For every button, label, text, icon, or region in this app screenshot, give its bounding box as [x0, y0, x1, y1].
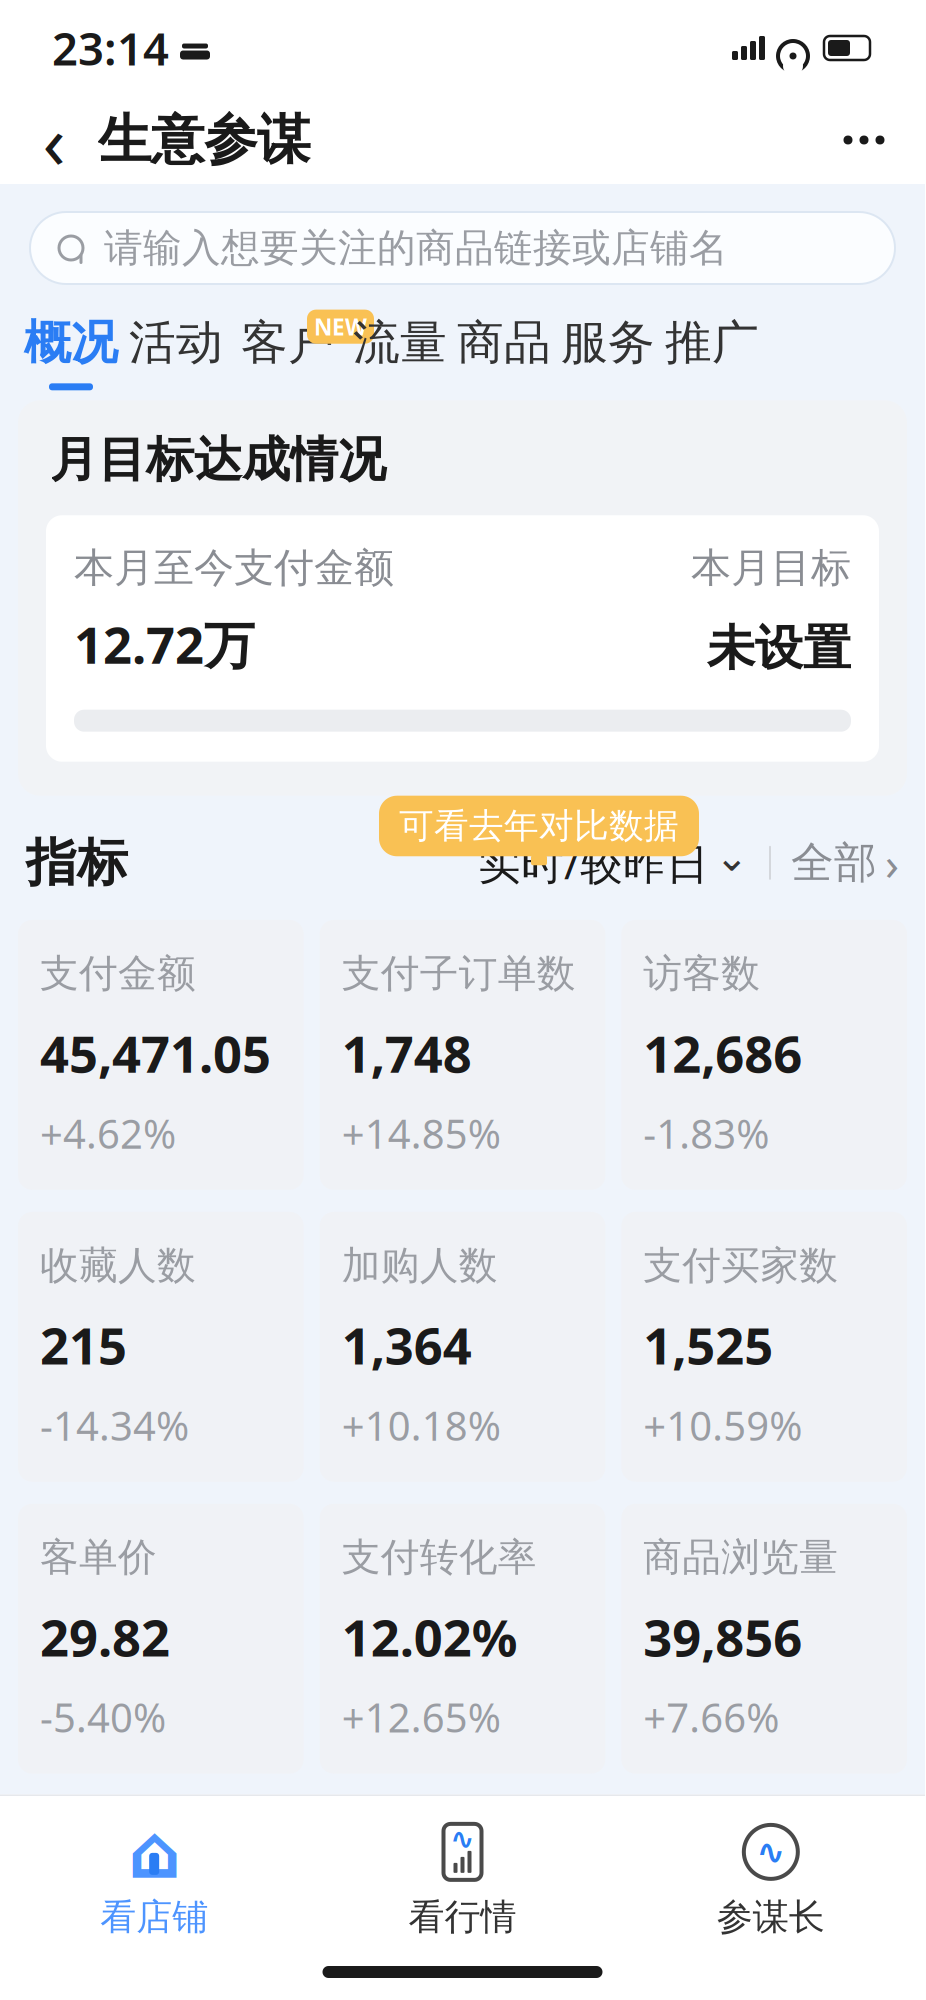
- staticText: +4.62%: [40, 1107, 176, 1160]
- button[interactable]: Back: [26, 105, 82, 175]
- staticText: 本月至今支付金额: [74, 543, 394, 592]
- staticText: ‹: [42, 90, 65, 190]
- staticText: +14.85%: [342, 1107, 501, 1160]
- button[interactable]: 活动: [124, 314, 228, 390]
- staticText: 215: [40, 1311, 127, 1379]
- staticText: +10.59%: [643, 1399, 802, 1452]
- button[interactable]: 客户: [228, 314, 348, 390]
- staticText: +12.65%: [342, 1690, 501, 1744]
- button[interactable]: 其他 12: [306, 1922, 460, 1982]
- staticText: 全部: [791, 837, 877, 889]
- staticText: 12.72万: [74, 610, 255, 678]
- staticText: 月目标达成情况: [50, 430, 386, 489]
- button[interactable]: ∿: [617, 1801, 925, 1939]
- staticText: 23:14: [52, 18, 169, 78]
- button[interactable]: 全部: [791, 833, 899, 893]
- button[interactable]: 概况: [18, 314, 124, 390]
- staticText: 服务: [561, 314, 655, 371]
- button[interactable]: 流量: [348, 314, 452, 390]
- staticText: ⌄: [715, 834, 749, 879]
- staticText: 看行情: [408, 1895, 516, 1939]
- staticText: 1,525: [643, 1311, 773, 1379]
- button[interactable]: 加购人数: [320, 1212, 605, 1482]
- staticText: -14.34%: [40, 1399, 189, 1452]
- staticText: 支付买家数: [643, 1242, 838, 1289]
- button[interactable]: ∿: [308, 1801, 617, 1939]
- staticText: 支付子订单数: [342, 950, 576, 997]
- staticText: 收藏人数: [40, 1242, 196, 1289]
- button[interactable]: 实时/较昨日: [478, 834, 749, 891]
- staticText: 45,471.05: [40, 1019, 271, 1087]
- staticText: +10.18%: [342, 1399, 501, 1452]
- button[interactable]: 推广: [660, 314, 764, 390]
- staticText: 39,856: [643, 1603, 802, 1670]
- button[interactable]: 商品: [452, 314, 556, 390]
- staticText: 智能诊断: [96, 1826, 300, 1888]
- staticText: 可看去年对比数据: [399, 805, 679, 847]
- staticText: 活动: [129, 314, 223, 371]
- button[interactable]: More options: [829, 105, 899, 175]
- staticText: 12.02%: [342, 1603, 518, 1670]
- button[interactable]: 访客数: [621, 920, 907, 1190]
- staticText: 本月目标: [691, 543, 851, 592]
- button[interactable]: 支付子订单数: [320, 920, 605, 1190]
- button[interactable]: 收藏人数: [18, 1212, 304, 1482]
- staticText: -1.83%: [643, 1107, 769, 1160]
- staticText: 请输入想要关注的商品链接或店铺名: [104, 224, 728, 272]
- staticText: 推广: [665, 314, 759, 371]
- staticText: 未设置: [707, 619, 851, 678]
- staticText: 其他 12: [306, 1922, 460, 1982]
- staticText: 全部策略 12: [28, 1922, 272, 1982]
- staticText: ∿: [450, 1822, 475, 1855]
- staticText: 12,686: [643, 1019, 802, 1087]
- button[interactable]: 支付买家数: [621, 1212, 907, 1482]
- staticText: 客单价: [40, 1534, 157, 1581]
- button[interactable]: 商品浏览量: [621, 1504, 907, 1774]
- staticText: ⌂: [128, 1809, 181, 1894]
- staticText: 概况: [24, 314, 118, 371]
- staticText: 生意参谋: [98, 107, 310, 173]
- staticText: +7.66%: [643, 1690, 779, 1744]
- staticText: 客户: [241, 314, 335, 371]
- staticText: 实时/较昨日: [478, 834, 709, 891]
- staticText: 流量: [353, 314, 447, 371]
- staticText: 参谋长: [717, 1895, 825, 1939]
- button[interactable]: 客单价: [18, 1504, 304, 1774]
- button[interactable]: 全部策略 12: [28, 1922, 272, 1982]
- staticText: ›: [885, 833, 899, 893]
- staticText: 看店铺: [100, 1895, 208, 1939]
- staticText: 商品: [457, 314, 551, 371]
- staticText: 支付金额: [40, 950, 196, 997]
- staticText: 支付转化率: [342, 1534, 537, 1581]
- staticText: ∿: [756, 1832, 785, 1871]
- button[interactable]: 支付金额: [18, 920, 304, 1190]
- staticText: 加购人数: [342, 1242, 498, 1289]
- staticText: 1,748: [342, 1019, 472, 1087]
- staticText: 商品浏览量: [643, 1534, 838, 1581]
- button[interactable]: ⌂: [0, 1801, 308, 1939]
- staticText: -5.40%: [40, 1690, 166, 1744]
- button[interactable]: 请输入想要关注的商品链接或店铺名: [30, 212, 895, 284]
- button[interactable]: 支付转化率: [320, 1504, 605, 1774]
- button[interactable]: 服务: [556, 314, 660, 390]
- staticText: 指标: [26, 832, 128, 894]
- staticText: 1,364: [342, 1311, 472, 1379]
- staticText: NEW: [314, 312, 367, 342]
- staticText: 29.82: [40, 1603, 170, 1670]
- staticText: 访客数: [643, 950, 760, 997]
